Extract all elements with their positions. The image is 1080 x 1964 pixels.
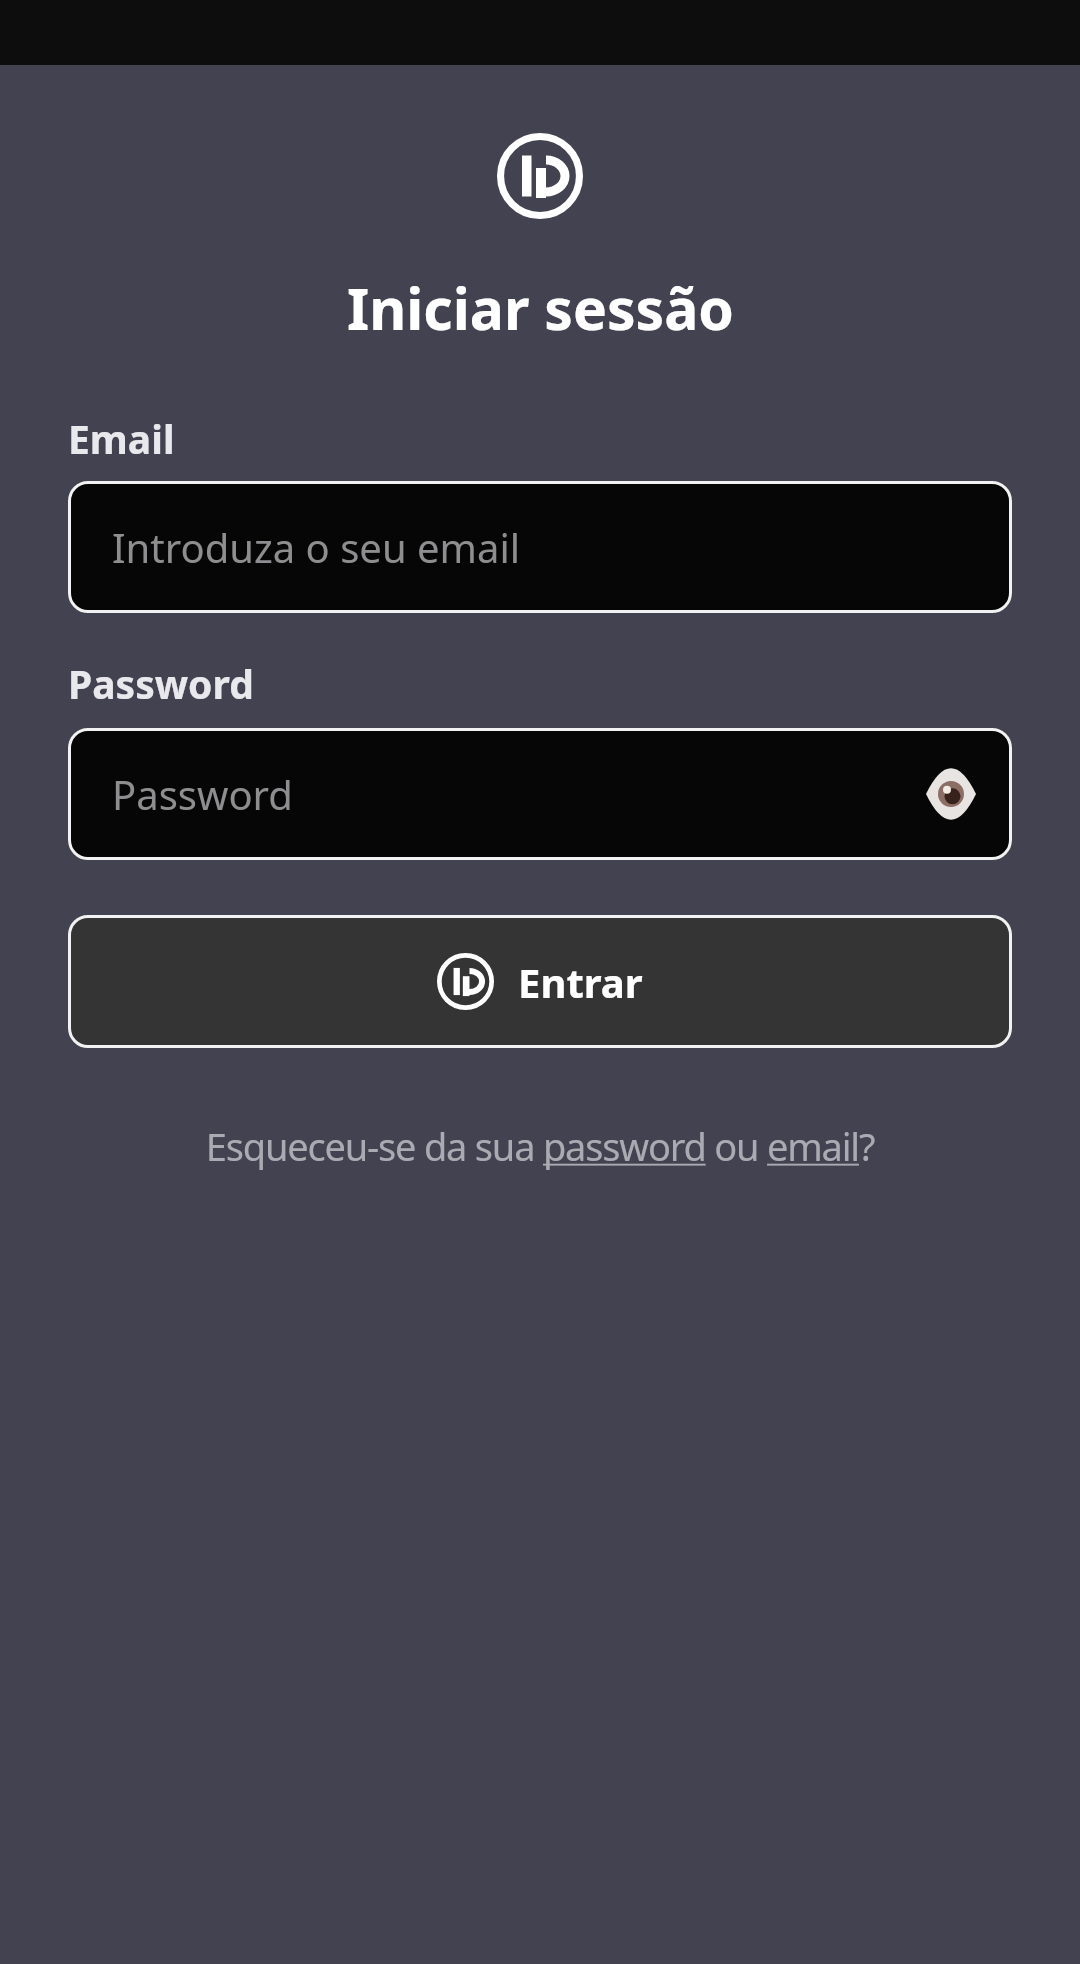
- staticText: Password: [112, 767, 293, 821]
- staticText: Email: [68, 412, 175, 465]
- button[interactable]: Esqueceu-se da sua password ou email?: [68, 1120, 1012, 1172]
- staticText: Introduza o seu email: [112, 520, 521, 574]
- button[interactable]: Entrar: [68, 915, 1012, 1048]
- staticText: Entrar: [518, 955, 643, 1009]
- button[interactable]: Password: [68, 728, 1012, 860]
- button[interactable]: Introduza o seu email: [68, 481, 1012, 613]
- staticText: Password: [68, 657, 254, 710]
- staticText: Iniciar sessão: [347, 269, 734, 347]
